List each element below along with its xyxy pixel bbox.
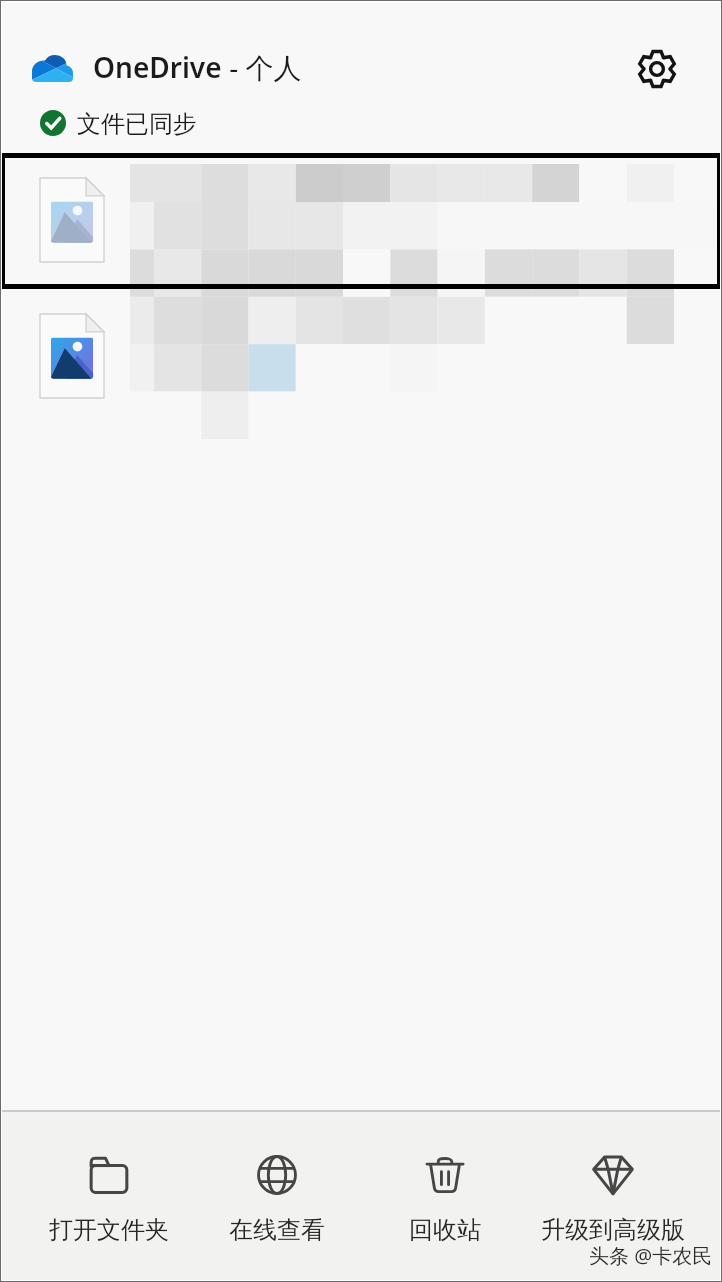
button[interactable] [0, 153, 722, 289]
staticText: 文件已同步 [77, 109, 197, 139]
staticText: 在线查看 [193, 1215, 361, 1245]
staticText: - 个人 [222, 48, 302, 86]
staticText: 头条 @卡农民 [589, 1242, 713, 1269]
staticText: 升级到高级版 [529, 1215, 697, 1245]
button[interactable]: 打开文件夹 [25, 1112, 193, 1232]
button[interactable]: 回收站 [361, 1112, 529, 1232]
staticText: 打开文件夹 [25, 1215, 193, 1245]
button[interactable] [0, 289, 722, 425]
button[interactable]: 升级到高级版 [529, 1112, 697, 1232]
button[interactable]: Settings [626, 38, 687, 99]
staticText: 回收站 [361, 1215, 529, 1245]
staticText: OneDrive [93, 48, 222, 86]
button[interactable]: 在线查看 [193, 1112, 361, 1232]
